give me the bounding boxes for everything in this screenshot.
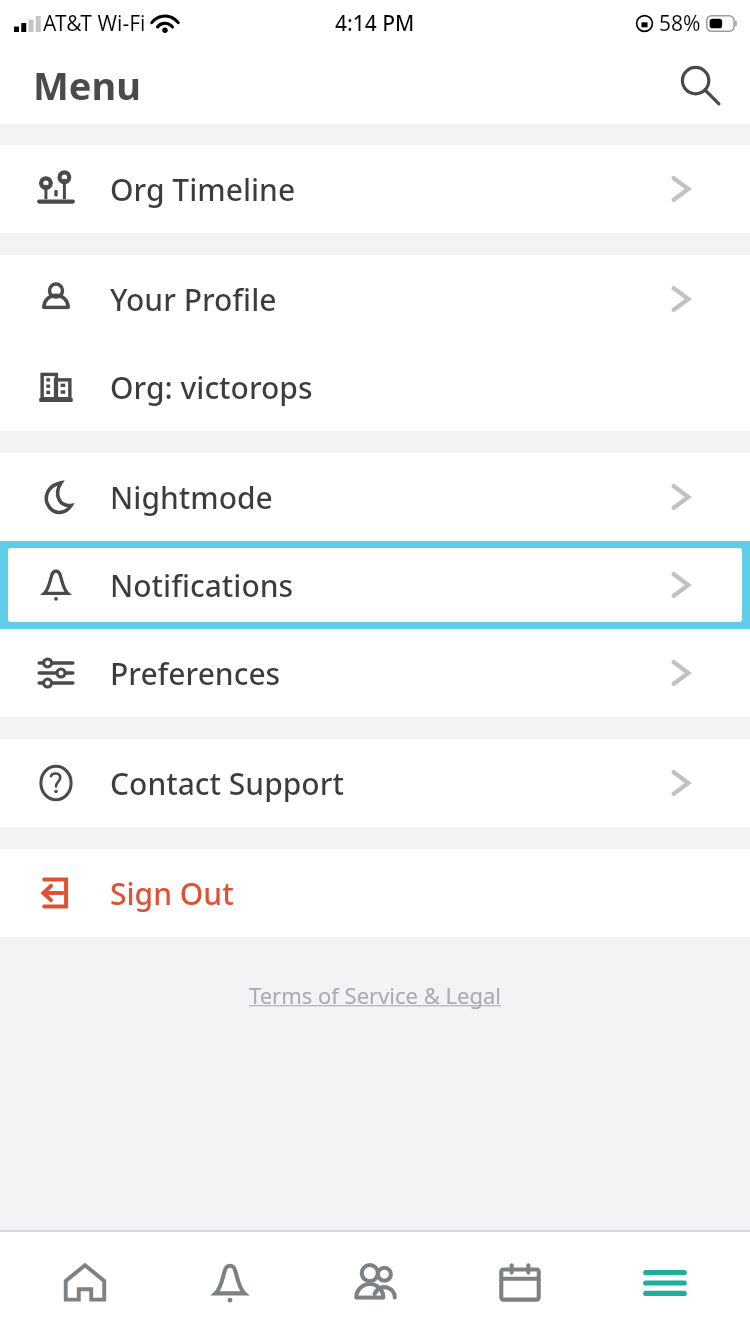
staticText: Menu: [33, 59, 141, 111]
button[interactable]: Notifications: [8, 548, 742, 622]
staticText: Sign Out: [110, 873, 234, 914]
button[interactable]: Your Profile: [0, 255, 750, 343]
button[interactable]: Sign Out: [0, 849, 750, 937]
button[interactable]: Org: victorops: [0, 343, 750, 431]
button[interactable]: Terms of Service & Legal: [243, 976, 508, 1014]
staticText: Your Profile: [110, 279, 277, 320]
button[interactable]: Alerts: [170, 1232, 290, 1334]
staticText: 4:14 PM: [335, 9, 415, 38]
staticText: Nightmode: [110, 477, 273, 518]
button[interactable]: Nightmode: [0, 453, 750, 541]
staticText: Contact Support: [110, 763, 344, 804]
button[interactable]: People: [315, 1232, 435, 1334]
button[interactable]: Contact Support: [0, 739, 750, 827]
staticText: Preferences: [110, 653, 281, 694]
staticText: Org Timeline: [110, 169, 296, 210]
staticText: AT&T Wi-Fi: [43, 9, 146, 38]
staticText: 58%: [659, 9, 701, 38]
staticText: Org: victorops: [110, 367, 313, 408]
button[interactable]: Menu: [605, 1232, 725, 1334]
button[interactable]: Org Timeline: [0, 145, 750, 233]
button[interactable]: Calendar: [460, 1232, 580, 1334]
staticText: Notifications: [110, 565, 294, 606]
staticText: Terms of Service & Legal: [249, 980, 502, 1010]
button[interactable]: Home: [25, 1232, 145, 1334]
button[interactable]: Search: [672, 57, 728, 113]
button[interactable]: Preferences: [0, 629, 750, 717]
